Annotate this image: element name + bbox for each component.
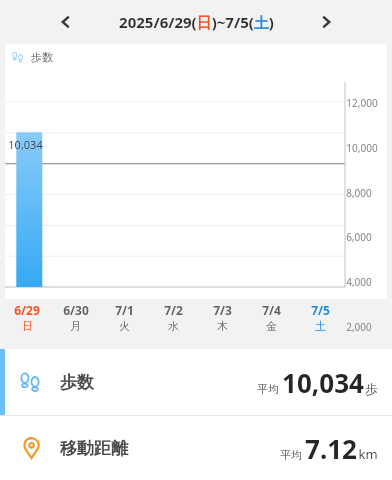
staticText: 歩数 — [60, 372, 94, 393]
staticText: 7/1 — [115, 302, 134, 318]
staticText: 歩 — [365, 381, 378, 397]
button[interactable]: Next week — [310, 5, 344, 39]
staticText: 7/2 — [164, 302, 183, 318]
button[interactable]: 歩数 — [0, 349, 392, 415]
staticText: 平均 — [257, 382, 279, 396]
staticText: 4,000 — [346, 275, 372, 289]
staticText: 土 — [315, 319, 326, 333]
staticText: 平均 — [280, 448, 302, 462]
staticText: 歩数 — [31, 50, 53, 64]
staticText: 2,000 — [346, 320, 372, 334]
staticText: 日 — [22, 319, 33, 333]
staticText: 金 — [266, 319, 277, 333]
staticText: 10,000 — [346, 141, 378, 155]
staticText: 7/3 — [213, 302, 232, 318]
staticText: 移動距離 — [60, 438, 128, 459]
staticText: 2025/6/29(日)~7/5(土) — [119, 12, 274, 32]
button[interactable]: Previous week — [48, 5, 82, 39]
staticText: km — [358, 445, 378, 463]
staticText: 6,000 — [346, 230, 372, 244]
staticText: 火 — [119, 319, 130, 333]
staticText: 7.12 — [305, 431, 357, 466]
staticText: 0 — [346, 365, 352, 379]
staticText: 7/4 — [262, 302, 281, 318]
staticText: 10,034 — [8, 137, 43, 152]
staticText: 6/29 — [14, 302, 40, 318]
staticText: 12,000 — [346, 96, 378, 110]
staticText: 6/30 — [63, 302, 89, 318]
staticText: 月 — [70, 319, 81, 333]
button[interactable]: 移動距離 — [0, 416, 392, 480]
staticText: 木 — [217, 319, 228, 333]
staticText: 水 — [168, 319, 179, 333]
staticText: 7/5 — [311, 302, 330, 318]
staticText: 10,034 — [282, 365, 364, 400]
staticText: 8,000 — [346, 186, 372, 200]
